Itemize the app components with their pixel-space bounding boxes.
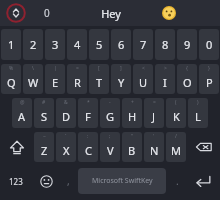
button[interactable]: ; [100,132,120,162]
button[interactable]: \ [23,64,43,94]
staticText: L [195,109,201,124]
button[interactable]: < [133,64,153,94]
staticText: ; [109,133,111,140]
staticText: 5 [96,37,103,52]
button[interactable]: Backspace [187,130,220,164]
button[interactable]: 8 [155,29,175,60]
staticText: } [208,65,210,72]
staticText: I [163,75,167,90]
staticText: ` [65,133,67,140]
staticText: Z [41,143,48,158]
button[interactable]: ] [111,64,131,94]
button[interactable]: Microsoft SwiftKey [78,168,166,194]
button[interactable]: 2 [23,29,43,60]
staticText: @ [20,99,25,106]
button[interactable]: / [166,132,186,162]
staticText: - [109,99,111,106]
button[interactable]: 4 [67,29,87,60]
button[interactable]: Shift [0,130,33,164]
button[interactable]: 0 [199,29,219,60]
staticText: " [131,133,134,140]
button[interactable]: 9 [177,29,197,60]
button[interactable]: ' [144,132,164,162]
staticText: A [18,109,26,124]
button[interactable]: [ [89,64,109,94]
button[interactable]: * [78,98,98,128]
staticText: 123 [9,176,23,187]
staticText: + [131,99,134,106]
button[interactable]: | [45,64,65,94]
button[interactable]: + [122,98,142,128]
staticText: * [87,99,90,106]
button[interactable]: % [1,64,21,94]
button[interactable]: = [67,64,87,94]
staticText: ) [197,99,199,106]
button[interactable]: , [60,164,76,198]
button[interactable]: = [144,98,164,128]
staticText: { [186,65,188,72]
staticText: J [152,109,156,124]
button[interactable]: ~ [34,132,54,162]
button[interactable]: > [155,64,175,94]
button[interactable]: 3 [45,29,65,60]
staticText: 4 [74,37,81,52]
button[interactable]: 6 [111,29,131,60]
staticText: ' [153,133,155,140]
button[interactable]: Hey [88,0,134,26]
button[interactable]: 0 [32,0,62,26]
staticText: 7 [140,37,147,52]
button[interactable]: Expand toolbar [6,3,26,23]
staticText: S [41,109,48,124]
button[interactable]: 123 [0,164,32,198]
staticText: & [64,99,68,106]
staticText: T [96,75,103,90]
button[interactable]: - [100,98,120,128]
staticText: U [139,75,148,90]
staticText: = [76,65,79,72]
staticText: [ [98,65,100,72]
staticText: ( [175,99,177,106]
staticText: R [74,75,81,90]
button[interactable]: ) [188,98,208,128]
staticText: P [206,75,213,90]
staticText: , [67,174,70,188]
button[interactable]: Emoji [32,164,60,198]
staticText: 6 [118,37,125,52]
staticText: K [173,109,180,124]
staticText: \ [32,65,34,72]
staticText: ~ [43,133,46,140]
button[interactable]: " [122,132,142,162]
button[interactable]: 5 [89,29,109,60]
staticText: F [85,109,91,124]
button[interactable]: & [56,98,76,128]
button[interactable]: 7 [133,29,153,60]
button[interactable]: Enter [186,164,220,198]
staticText: N [150,143,159,158]
staticText: Y [118,75,125,90]
button[interactable]: } [199,64,219,94]
button[interactable]: 1 [1,29,21,60]
staticText: 2 [30,37,37,52]
staticText: C [85,143,92,158]
staticText: O [183,75,192,90]
staticText: . [176,174,179,188]
staticText: G [106,109,115,124]
staticText: ] [120,65,122,72]
button[interactable]: Emoji suggestion [158,2,180,24]
button[interactable]: ` [56,132,76,162]
staticText: / [175,133,177,140]
staticText: D [62,109,71,124]
staticText: < [142,65,145,72]
staticText: 0 [206,37,213,52]
button[interactable]: ( [166,98,186,128]
button[interactable]: @ [12,98,32,128]
staticText: M [171,143,181,158]
button[interactable]: : [78,132,98,162]
staticText: 0 [44,6,50,20]
staticText: W [28,75,39,90]
button[interactable]: # [34,98,54,128]
staticText: 8 [162,37,169,52]
button[interactable]: { [177,64,197,94]
staticText: > [164,65,167,72]
